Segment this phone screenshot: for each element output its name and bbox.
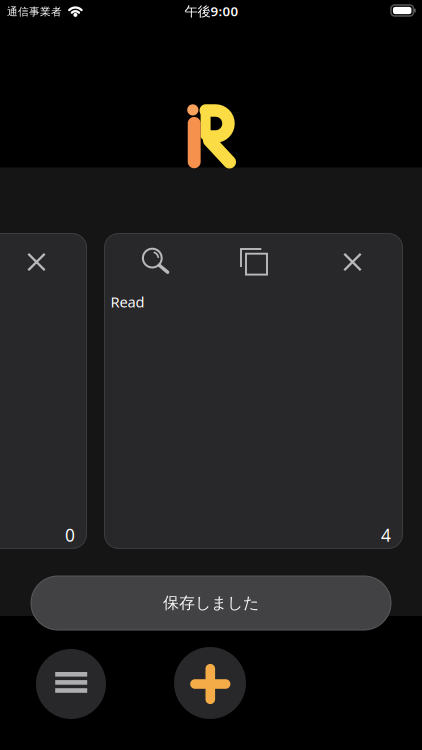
staticText: 4 [381, 523, 391, 546]
button[interactable]: Menu [36, 649, 106, 719]
staticText: 保存しました [163, 593, 259, 613]
staticText: 通信事業者 [7, 5, 62, 18]
button[interactable]: Close [330, 240, 374, 284]
button[interactable]: Search [131, 239, 175, 283]
button[interactable]: Add [174, 647, 246, 719]
staticText: 午後9:00 [184, 2, 238, 20]
button[interactable]: Close [14, 240, 58, 284]
staticText: 0 [65, 523, 75, 546]
staticText: Read [110, 292, 144, 311]
button[interactable]: Copy [231, 240, 275, 284]
